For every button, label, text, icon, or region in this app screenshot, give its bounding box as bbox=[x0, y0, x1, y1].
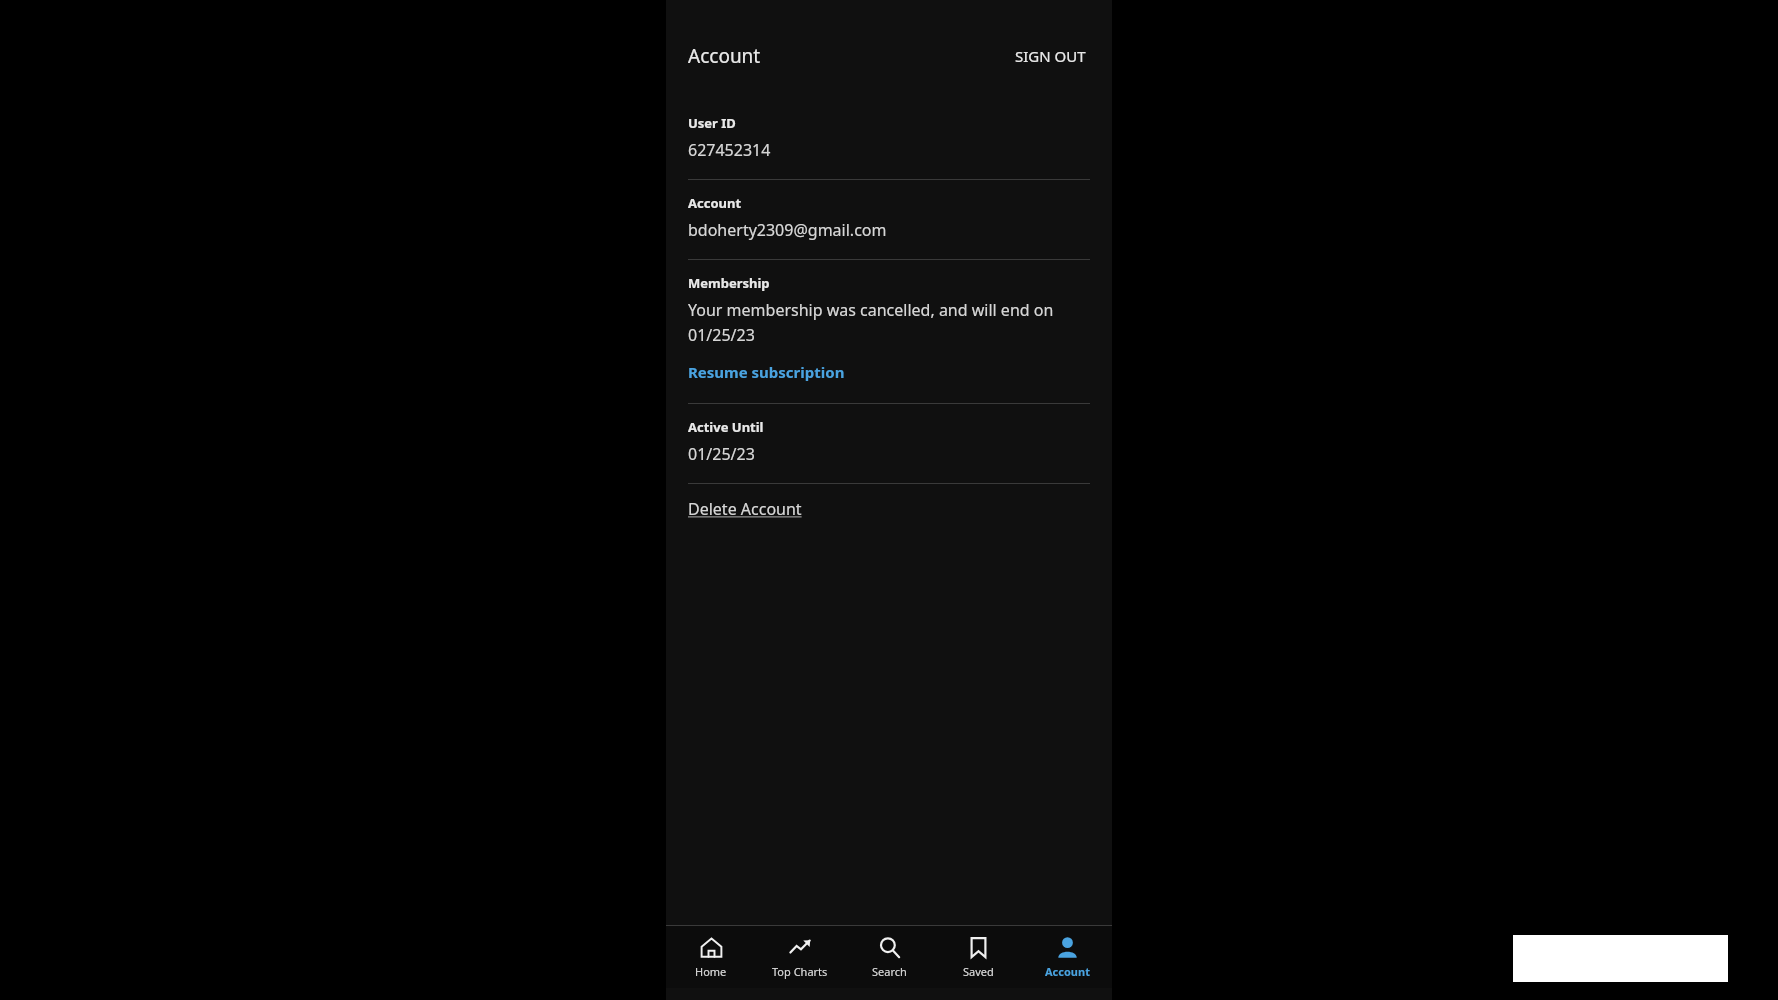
staticText: 627452314 bbox=[688, 139, 771, 161]
button[interactable]: Delete Account bbox=[688, 484, 802, 528]
staticText: Search bbox=[872, 964, 907, 979]
button[interactable]: Resume subscription bbox=[688, 359, 845, 385]
staticText: Saved bbox=[963, 964, 994, 979]
staticText: Active Until bbox=[688, 418, 764, 436]
staticText: Account bbox=[1045, 964, 1090, 979]
staticText: bdoherty2309@gmail.com bbox=[688, 219, 887, 241]
staticText: SIGN OUT bbox=[1015, 46, 1086, 66]
button[interactable]: Saved bbox=[934, 926, 1022, 988]
button[interactable]: Top Charts bbox=[756, 926, 844, 988]
button[interactable]: Account bbox=[1023, 926, 1111, 988]
staticText: Membership bbox=[688, 274, 770, 292]
staticText: Account bbox=[688, 43, 761, 69]
button[interactable]: Search bbox=[845, 926, 933, 988]
staticText: Delete Account bbox=[688, 498, 802, 520]
staticText: Account bbox=[688, 194, 742, 212]
staticText: User ID bbox=[688, 114, 736, 132]
staticText: Your membership was cancelled, and will … bbox=[688, 299, 1090, 345]
staticText: Top Charts bbox=[772, 964, 828, 979]
button[interactable]: Home bbox=[667, 926, 755, 988]
staticText: Resume subscription bbox=[688, 362, 845, 382]
button[interactable]: SIGN OUT bbox=[1011, 40, 1090, 72]
staticText: 01/25/23 bbox=[688, 443, 755, 465]
staticText: Home bbox=[695, 964, 727, 979]
